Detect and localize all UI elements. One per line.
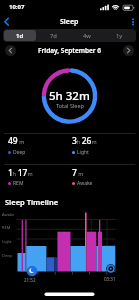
staticText: 1d (16, 32, 24, 40)
staticText: Deep (2, 253, 12, 258)
button[interactable] (5, 45, 16, 56)
staticText: Deep (13, 149, 26, 156)
button[interactable] (128, 15, 138, 27)
button[interactable] (2, 15, 14, 27)
staticText: Total Sleep (56, 102, 84, 109)
staticText: 4w (83, 32, 91, 40)
staticText: 3h 26m (72, 135, 97, 147)
button[interactable]: Awake (72, 180, 93, 187)
staticText: Sleep (60, 17, 79, 27)
button[interactable]: REM (8, 180, 24, 187)
staticText: 10:07 (9, 3, 25, 11)
staticText: Awake (77, 180, 93, 187)
staticText: 03:31 (104, 276, 116, 282)
staticText: Light (2, 239, 12, 244)
staticText: REM (13, 180, 24, 187)
staticText: 7d (50, 32, 57, 40)
button[interactable]: Light (72, 149, 89, 156)
staticText: Friday, September 6 (38, 46, 102, 55)
staticText: 49 m (8, 135, 25, 147)
staticText: Awake (2, 212, 15, 217)
staticText: 1h 17m (8, 167, 33, 179)
button[interactable]: 4w (71, 30, 102, 41)
button[interactable]: 1d (4, 30, 36, 41)
staticText: REM (2, 225, 11, 230)
button[interactable]: 7d (38, 30, 69, 41)
button[interactable]: 1y (104, 30, 135, 41)
staticText: 1y (116, 32, 123, 40)
button[interactable] (123, 45, 134, 56)
staticText: Sleep Timeline (5, 197, 59, 207)
staticText: 21:52 (24, 277, 36, 283)
staticText: 7 m (72, 167, 84, 179)
button[interactable]: Deep (8, 149, 26, 156)
staticText: 5h 32m (49, 88, 90, 104)
staticText: Light (77, 149, 89, 156)
